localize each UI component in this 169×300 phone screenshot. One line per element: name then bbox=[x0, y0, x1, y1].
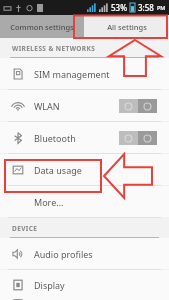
staticText: Audio profiles bbox=[34, 248, 93, 260]
staticText: All settings bbox=[107, 22, 147, 32]
button[interactable]: More... bbox=[0, 186, 169, 217]
button[interactable]: Audio profiles bbox=[0, 238, 169, 269]
button[interactable]: All settings bbox=[84, 15, 169, 38]
staticText: Display bbox=[34, 279, 65, 291]
staticText: Data usage bbox=[34, 164, 82, 176]
staticText: More... bbox=[34, 196, 64, 208]
button[interactable]: SIM management bbox=[0, 58, 169, 89]
button[interactable]: Data usage bbox=[0, 154, 169, 185]
button[interactable]: Toggle bbox=[119, 131, 157, 145]
staticText: 53% bbox=[111, 2, 127, 13]
staticText: 3:58 bbox=[138, 2, 154, 13]
button[interactable]: Common settings bbox=[0, 15, 84, 38]
button[interactable]: WLAN bbox=[0, 90, 169, 121]
staticText: WIRELESS & NETWORKS bbox=[12, 44, 96, 53]
staticText: WLAN bbox=[34, 100, 60, 112]
staticText: Bluetooth bbox=[34, 132, 76, 144]
staticText: SIM management bbox=[34, 68, 110, 80]
button[interactable]: Display bbox=[0, 270, 169, 300]
staticText: DEVICE bbox=[12, 224, 38, 233]
staticText: Common settings bbox=[10, 22, 74, 32]
button[interactable]: Bluetooth bbox=[0, 122, 169, 153]
staticText: PM bbox=[157, 4, 166, 11]
button[interactable]: Toggle bbox=[119, 99, 157, 113]
